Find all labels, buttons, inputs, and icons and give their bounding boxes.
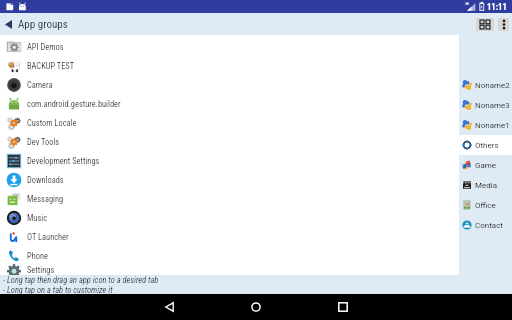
staticText: Camera — [27, 80, 53, 90]
button[interactable]: Messaging — [0, 189, 459, 208]
button[interactable]: Noname3 — [459, 95, 512, 115]
staticText: 11:11 — [487, 2, 507, 12]
button[interactable]: Home — [243, 294, 269, 320]
staticText: Settings — [27, 265, 55, 275]
button[interactable]: Music — [0, 208, 459, 227]
button[interactable]: Noname2 — [459, 75, 512, 95]
button[interactable]: Grid view — [476, 18, 494, 31]
button[interactable]: Dev Tools — [0, 132, 459, 151]
staticText: OT Launcher — [27, 232, 69, 242]
staticText: API Demos — [27, 42, 64, 52]
staticText: Game — [475, 161, 497, 170]
staticText: com.android.gesture.builder — [27, 99, 121, 109]
button[interactable]: Contact — [459, 215, 512, 235]
button[interactable]: BACKUP TEST — [0, 56, 459, 75]
button[interactable]: Back — [0, 16, 16, 32]
staticText: Music — [27, 213, 48, 223]
staticText: Messaging — [27, 194, 64, 204]
staticText: Development Settings — [27, 156, 100, 166]
staticText: Phone — [27, 251, 48, 261]
button[interactable]: Others — [459, 135, 512, 155]
staticText: Noname2 — [475, 81, 510, 90]
button[interactable]: Noname1 — [459, 115, 512, 135]
staticText: - Long tap on a tab to customize it — [3, 285, 113, 294]
button[interactable]: Custom Locale — [0, 113, 459, 132]
staticText: App groups — [18, 18, 68, 31]
staticText: Office — [475, 201, 496, 210]
button[interactable]: Settings — [0, 265, 459, 275]
button[interactable]: Downloads — [0, 170, 459, 189]
button[interactable]: Media — [459, 175, 512, 195]
staticText: - Long tap then drag an app icon to a de… — [3, 275, 159, 285]
button[interactable]: Recents — [330, 294, 356, 320]
staticText: BACKUP TEST — [27, 61, 75, 71]
button[interactable]: OT Launcher — [0, 227, 459, 246]
button[interactable]: API Demos — [0, 37, 459, 56]
button[interactable]: More options — [498, 18, 509, 31]
button[interactable]: Office — [459, 195, 512, 215]
staticText: Others — [475, 141, 499, 150]
staticText: Noname3 — [475, 101, 510, 110]
button[interactable]: Back — [156, 294, 182, 320]
button[interactable]: com.android.gesture.builder — [0, 94, 459, 113]
staticText: Custom Locale — [27, 118, 77, 128]
button[interactable]: Development Settings — [0, 151, 459, 170]
staticText: Dev Tools — [27, 137, 60, 147]
button[interactable]: Phone — [0, 246, 459, 265]
button[interactable]: Game — [459, 155, 512, 175]
staticText: Media — [475, 181, 498, 190]
staticText: Contact — [475, 221, 503, 230]
button[interactable]: Camera — [0, 75, 459, 94]
staticText: Noname1 — [475, 121, 510, 130]
staticText: Downloads — [27, 175, 64, 185]
